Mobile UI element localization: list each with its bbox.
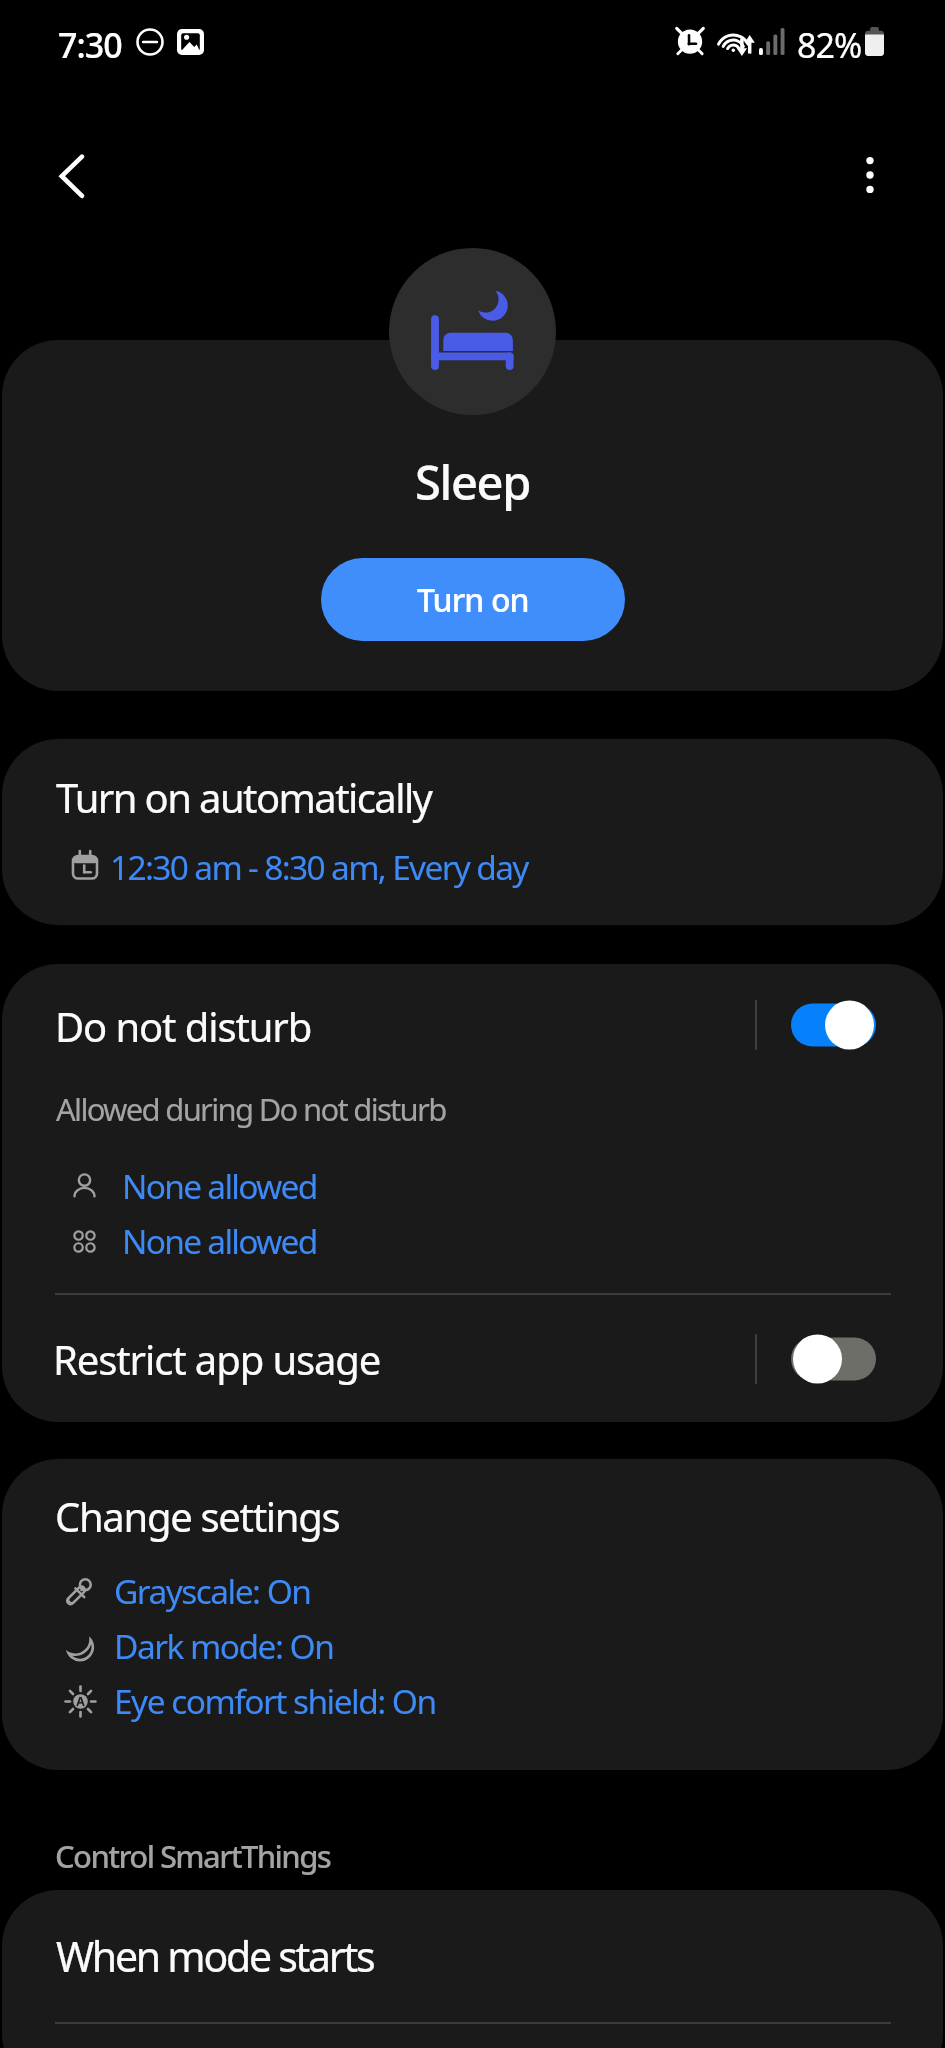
staticText: Control SmartThings — [55, 1835, 331, 1877]
staticText: Restrict app usage — [53, 1332, 381, 1386]
button[interactable]: Turn on — [321, 558, 625, 641]
staticText: Do not disturb — [55, 999, 312, 1053]
button[interactable]: Restrict app usage — [2, 1309, 943, 1422]
button[interactable]: Toggle on — [791, 1000, 877, 1050]
staticText: 82% — [797, 22, 862, 68]
button[interactable]: More options — [830, 135, 910, 215]
staticText: Grayscale: On — [114, 1568, 311, 1614]
button[interactable]: None allowed — [71, 1162, 317, 1210]
button[interactable]: Dark mode: On — [65, 1622, 334, 1670]
button[interactable]: Turn on automatically — [2, 739, 943, 925]
staticText: 7:30 — [58, 22, 122, 68]
staticText: Eye comfort shield: On — [114, 1678, 436, 1724]
staticText: Sleep — [415, 450, 531, 514]
staticText: Allowed during Do not disturb — [56, 1088, 446, 1130]
staticText: Dark mode: On — [114, 1623, 334, 1669]
staticText: None allowed — [122, 1163, 317, 1209]
button[interactable]: Grayscale: On — [65, 1567, 311, 1615]
staticText: Turn on — [417, 578, 529, 622]
staticText: When mode starts — [56, 1928, 374, 1984]
staticText: 12:30 am - 8:30 am, Every day — [110, 844, 528, 890]
button[interactable]: Back — [32, 135, 112, 215]
staticText: None allowed — [122, 1218, 317, 1264]
button[interactable]: Toggle off — [791, 1334, 877, 1384]
button[interactable]: Eye comfort shield: On — [65, 1677, 436, 1725]
staticText: Change settings — [55, 1489, 340, 1543]
button[interactable]: Do not disturb — [2, 964, 943, 1084]
staticText: Turn on automatically — [56, 770, 432, 824]
button[interactable]: None allowed — [71, 1217, 317, 1265]
